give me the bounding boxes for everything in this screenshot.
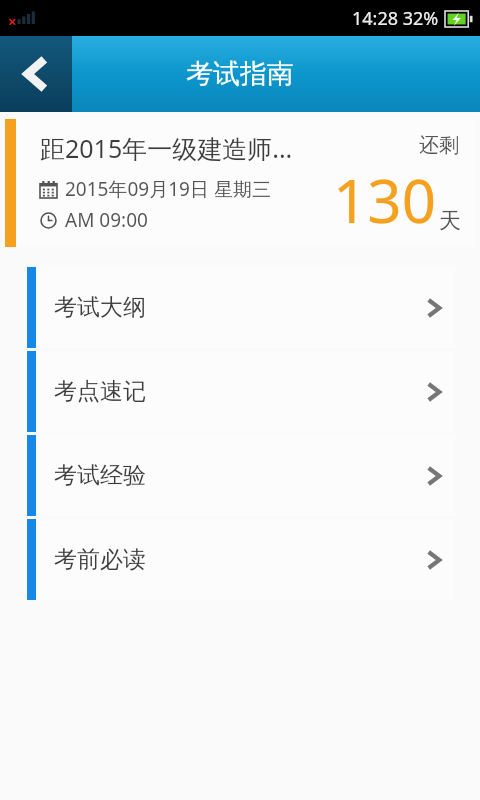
staticText: 距2015年一级建造师... [40, 131, 293, 165]
staticText: 考前必读 [54, 545, 146, 574]
button[interactable]: 距2015年一级建造师... [5, 119, 475, 247]
staticText: 130 [333, 159, 436, 241]
staticText: 14:28 32% [352, 6, 439, 31]
button[interactable]: 考试大纲 [27, 267, 455, 348]
staticText: 考点速记 [54, 377, 146, 406]
button[interactable]: 考试经验 [27, 435, 455, 516]
button[interactable]: Back [0, 36, 72, 112]
staticText: 2015年09月19日 星期三 [65, 176, 271, 202]
staticText: 考试经验 [54, 461, 146, 490]
staticText: 考试指南 [186, 57, 294, 91]
staticText: AM 09:00 [65, 207, 148, 233]
button[interactable]: 考前必读 [27, 519, 455, 600]
button[interactable]: 考点速记 [27, 351, 455, 432]
staticText: 还剩 [419, 133, 459, 158]
staticText: 天 [439, 207, 461, 235]
staticText: 考试大纲 [54, 293, 146, 322]
